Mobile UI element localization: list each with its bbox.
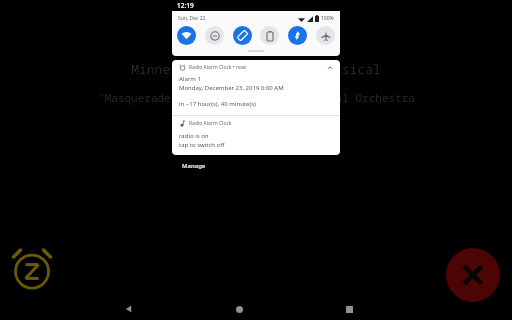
button[interactable]: Airplane mode (316, 26, 335, 45)
button[interactable]: Auto-rotate (233, 26, 252, 45)
staticText: Radio Alarm Clock (189, 120, 232, 127)
button[interactable]: Radio Alarm Clock (172, 116, 340, 155)
staticText: Minnesota Public Radio Classical (131, 60, 381, 78)
staticText: 12:19 (177, 1, 194, 10)
button[interactable]: Manage (182, 162, 206, 170)
staticText: in ~17 hour(s), 40 minute(s) (179, 100, 256, 108)
staticText: "Masquerade: Waltz" by Danish National O… (98, 90, 415, 105)
staticText: Manage (182, 162, 206, 170)
button[interactable]: Snooze alarm (4, 240, 60, 296)
staticText: Radio Alarm Clock • now (189, 64, 246, 71)
button[interactable]: Dismiss alarm (446, 248, 500, 302)
staticText: Alarm 1 (179, 75, 201, 83)
button[interactable]: Mobile data (288, 26, 307, 45)
button[interactable]: Battery Saver (260, 26, 279, 45)
button[interactable]: Do not disturb (205, 26, 224, 45)
button[interactable]: Home (228, 298, 250, 320)
staticText: tap to switch off (179, 141, 225, 149)
staticText: radio is on (179, 132, 209, 140)
button[interactable]: Recents (338, 298, 360, 320)
button[interactable]: Radio Alarm Clock • now (172, 60, 340, 115)
staticText: Monday, December 23, 2019 6:00 AM (179, 84, 284, 92)
staticText: 100% (321, 15, 334, 22)
button[interactable]: Wi-Fi (177, 26, 196, 45)
staticText: Sun, Dec 22 (178, 15, 206, 22)
button[interactable]: Back (118, 298, 140, 320)
